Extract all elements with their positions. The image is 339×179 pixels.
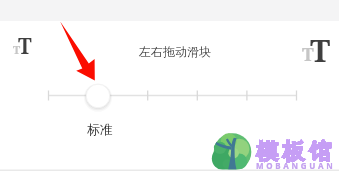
staticText: 左右拖动滑块 [139, 44, 211, 59]
staticText: 模板馆 [256, 138, 336, 166]
staticText: T [310, 29, 331, 71]
staticText: T [18, 32, 32, 61]
staticText: 标准 [87, 121, 113, 137]
staticText: 模板馆 [256, 138, 336, 166]
staticText: 模板馆 [256, 138, 336, 166]
staticText: 模板馆 [256, 138, 336, 166]
button[interactable]: Increase text size [302, 29, 323, 71]
staticText: T [13, 42, 21, 57]
staticText: 模板馆 [256, 138, 336, 166]
staticText: 模板馆 [256, 138, 336, 166]
staticText: 模板馆 [256, 138, 336, 166]
staticText: 模板馆 [256, 138, 336, 166]
staticText: T [302, 42, 314, 67]
button[interactable]: Text size slider [40, 82, 305, 109]
staticText: MOBANGUAN [256, 160, 336, 171]
button[interactable]: Decrease text size [13, 32, 27, 61]
button[interactable]: Slider handle [83, 81, 113, 111]
staticText: 模板馆 [256, 138, 336, 166]
